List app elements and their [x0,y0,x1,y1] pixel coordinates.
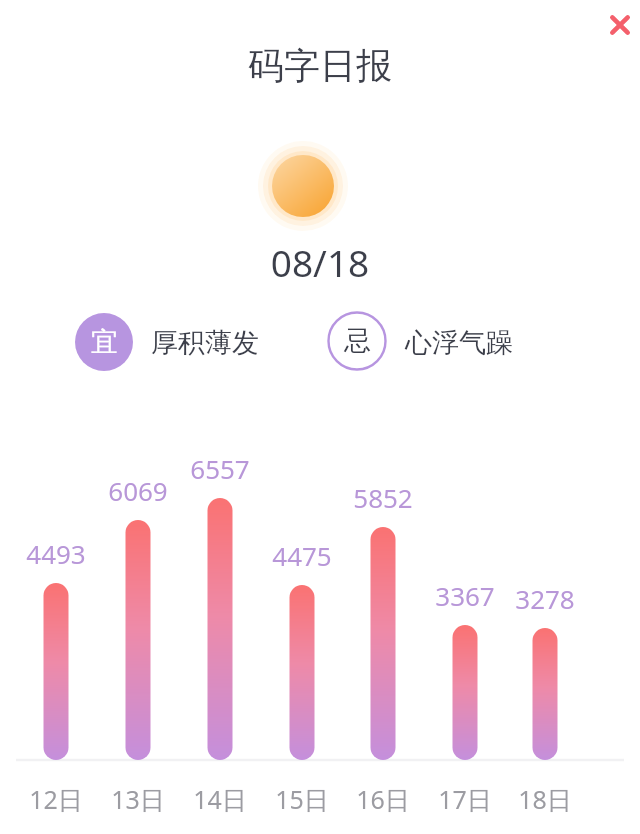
staticText: 6069 [88,473,188,834]
staticText: 12日 [6,782,106,834]
button[interactable]: 厚积薄发 [151,326,259,360]
button[interactable]: 忌 [328,312,386,370]
staticText: 3367 [415,578,515,834]
staticText: 14日 [170,782,270,834]
staticText: 3278 [495,581,595,834]
staticText: 08/18 [0,237,640,834]
button[interactable]: 宜 [75,313,133,371]
staticText: 忌 [344,324,371,358]
staticText: 4493 [6,536,106,834]
button[interactable]: 心浮气躁 [405,326,513,360]
staticText: 6557 [170,451,270,834]
staticText: 厚积薄发 [151,326,259,360]
staticText: 码字日报 [0,43,640,834]
staticText: 18日 [495,782,595,834]
staticText: 16日 [333,782,433,834]
staticText: 15日 [252,782,352,834]
staticText: 17日 [415,782,515,834]
staticText: 5852 [333,480,433,834]
staticText: 13日 [88,782,188,834]
staticText: 宜 [91,325,118,359]
staticText: 心浮气躁 [405,326,513,360]
staticText: 4475 [252,538,352,834]
button[interactable]: Close [590,0,640,50]
